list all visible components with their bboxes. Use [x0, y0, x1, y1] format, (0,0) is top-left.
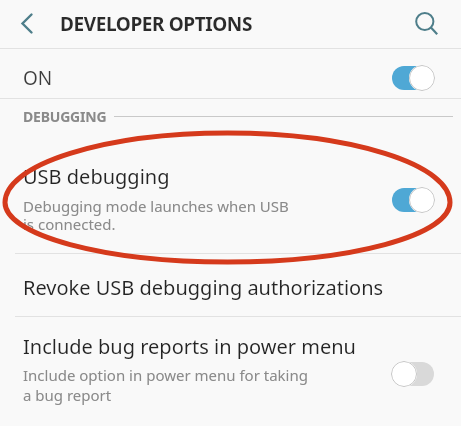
button[interactable]	[413, 0, 461, 48]
button[interactable]: USB debugging	[0, 131, 461, 253]
staticText: USB debugging	[23, 163, 170, 190]
staticText: Debugging mode launches when USB is conn…	[23, 196, 289, 235]
button[interactable]: Include bug reports in power menu	[0, 317, 461, 426]
staticText: Include bug reports in power menu	[23, 333, 356, 360]
staticText: Include option in power menu for taking …	[23, 365, 308, 405]
staticText: DEVELOPER OPTIONS	[60, 11, 252, 37]
staticText: ON	[23, 65, 53, 91]
button[interactable]	[0, 0, 48, 48]
staticText: DEBUGGING	[23, 107, 107, 126]
button[interactable]: Revoke USB debugging authorizations	[0, 254, 461, 316]
staticText: Revoke USB debugging authorizations	[23, 274, 384, 301]
button[interactable]: ON	[0, 49, 461, 98]
